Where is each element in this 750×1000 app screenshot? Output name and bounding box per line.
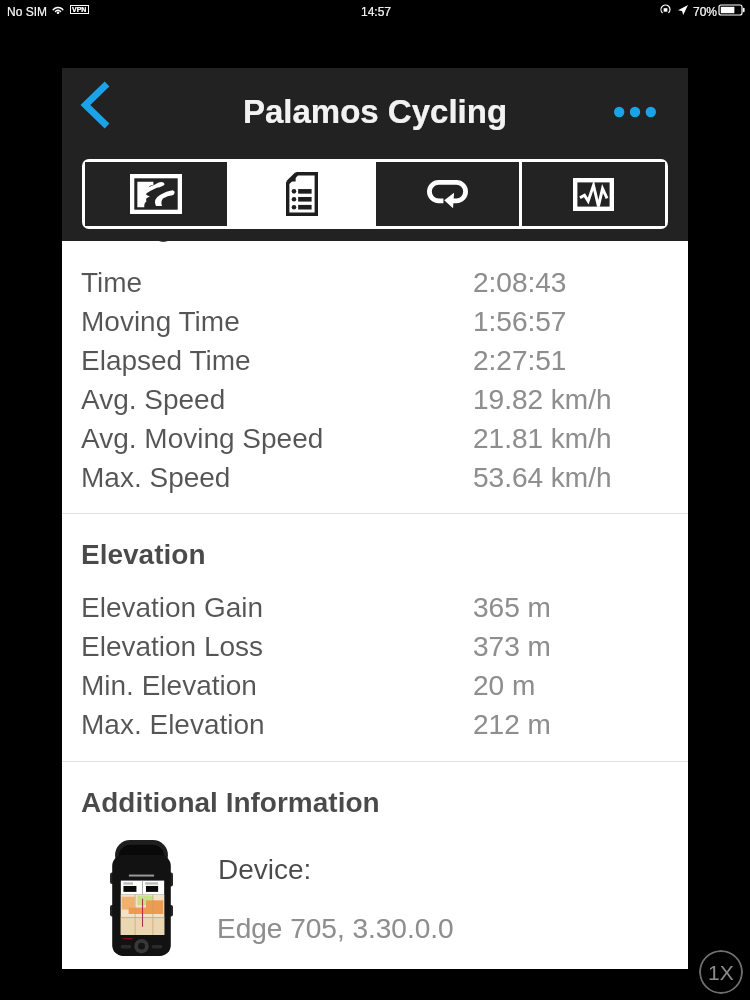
staticText: VPN [72, 6, 87, 14]
staticText: 53.64 km/h [473, 462, 612, 493]
staticText: Additional Information [81, 787, 380, 818]
staticText: 21.81 km/h [473, 423, 612, 454]
button[interactable]: Time [62, 267, 688, 306]
button[interactable]: Elevation Gain [62, 592, 688, 631]
staticText: 2:08:43 [473, 267, 567, 298]
staticText: 14:57 [361, 5, 392, 18]
button[interactable]: Map [85, 162, 227, 226]
staticText: No SIM [7, 5, 48, 18]
button[interactable]: Back [67, 78, 121, 132]
staticText: 2:27:51 [473, 345, 567, 376]
button[interactable]: Details [230, 162, 373, 226]
staticText: Avg. Moving Speed [81, 423, 324, 454]
staticText: 1:56:57 [473, 306, 567, 337]
staticText: Edge 705, 3.30.0.0 [217, 913, 454, 944]
button[interactable]: Avg. Speed [62, 384, 688, 423]
staticText: 212 m [473, 709, 551, 740]
staticText: 19.82 km/h [473, 384, 612, 415]
button[interactable]: Max. Speed [62, 462, 688, 501]
staticText: 365 m [473, 592, 551, 623]
staticText: 373 m [473, 631, 551, 662]
staticText: Elevation Loss [81, 631, 264, 662]
button[interactable]: Elapsed Time [62, 345, 688, 384]
button[interactable]: Charts [522, 162, 665, 226]
button[interactable]: Max. Elevation [62, 709, 688, 748]
button[interactable]: Min. Elevation [62, 670, 688, 709]
staticText: 1X [708, 961, 734, 984]
staticText: Elevation [81, 539, 206, 570]
staticText: 20 m [473, 670, 536, 701]
staticText: 70% [693, 5, 718, 18]
staticText: Max. Elevation [81, 709, 265, 740]
staticText: Min. Elevation [81, 670, 257, 701]
staticText: Time [81, 267, 143, 298]
staticText: Timing [81, 241, 173, 242]
staticText: Avg. Speed [81, 384, 226, 415]
button[interactable]: Elevation Loss [62, 631, 688, 670]
button[interactable]: Avg. Moving Speed [62, 423, 688, 462]
staticText: Device: [218, 854, 312, 885]
staticText: Elevation Gain [81, 592, 264, 623]
staticText: Max. Speed [81, 462, 231, 493]
button[interactable]: Moving Time [62, 306, 688, 345]
staticText: Moving Time [81, 306, 240, 337]
staticText: Elapsed Time [81, 345, 251, 376]
button[interactable]: Laps [376, 162, 519, 226]
button[interactable]: Toggle zoom scale 1X [699, 950, 743, 994]
button[interactable]: More options [607, 88, 662, 136]
staticText: Palamos Cycling [62, 93, 688, 130]
